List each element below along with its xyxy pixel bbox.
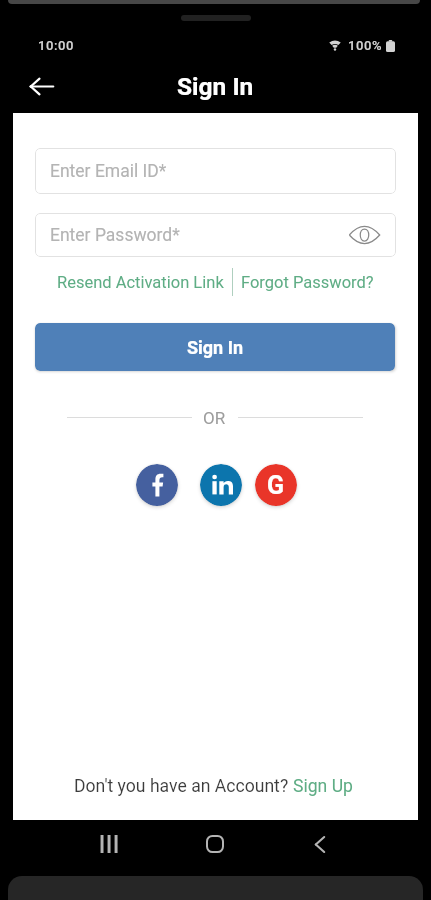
button[interactable]: Back bbox=[17, 62, 65, 110]
button[interactable]: Recent apps bbox=[91, 826, 127, 862]
staticText: Sign Up bbox=[293, 776, 353, 797]
staticText: 100% bbox=[348, 38, 383, 53]
button[interactable]: Resend Activation Link bbox=[51, 273, 232, 292]
staticText: Sign In bbox=[177, 72, 254, 101]
staticText: Resend Activation Link bbox=[57, 273, 224, 292]
staticText: Enter Password* bbox=[50, 225, 180, 246]
button[interactable]: Show password bbox=[347, 218, 381, 252]
button[interactable]: Sign in with Google bbox=[255, 464, 297, 506]
staticText: 10:00 bbox=[38, 38, 75, 53]
staticText: OR bbox=[203, 408, 226, 428]
button[interactable]: Back bbox=[302, 826, 338, 862]
button[interactable]: Enter Password* bbox=[35, 213, 396, 257]
button[interactable]: Sign in with Facebook bbox=[136, 464, 178, 506]
staticText: Sign In bbox=[187, 337, 244, 358]
button[interactable]: Sign Up bbox=[293, 776, 353, 797]
staticText: Enter Email ID* bbox=[50, 161, 167, 182]
button[interactable]: Enter Email ID* bbox=[35, 148, 396, 194]
staticText: G bbox=[267, 471, 285, 500]
button[interactable]: Forgot Password? bbox=[233, 273, 380, 292]
staticText: Don't you have an Account? bbox=[74, 776, 293, 797]
button[interactable]: Sign In bbox=[35, 323, 395, 371]
staticText: Forgot Password? bbox=[241, 273, 374, 292]
button[interactable]: Home bbox=[197, 826, 233, 862]
button[interactable]: Sign in with LinkedIn bbox=[200, 464, 242, 506]
